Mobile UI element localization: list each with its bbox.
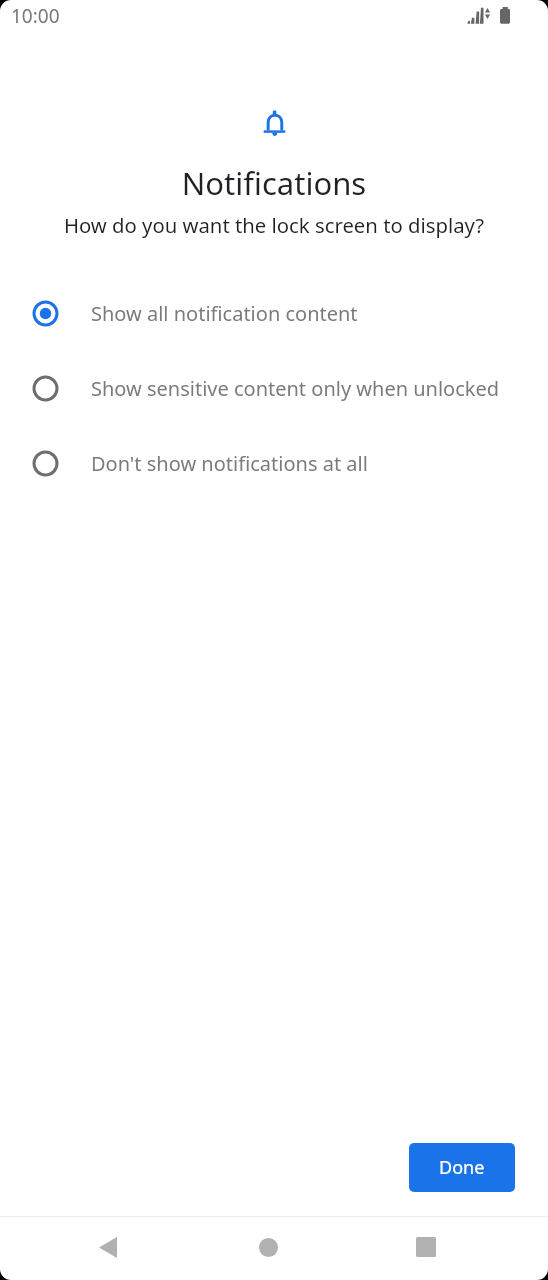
staticText: How do you want the lock screen to displ… <box>0 211 548 239</box>
staticText: Notifications <box>0 162 548 204</box>
staticText: Done <box>439 1155 485 1180</box>
staticText: 10:00 <box>11 3 60 29</box>
button[interactable]: Home <box>240 1219 296 1275</box>
button[interactable]: Done <box>409 1143 515 1192</box>
staticText: Don't show notifications at all <box>91 450 368 477</box>
button[interactable]: Recent apps <box>398 1219 454 1275</box>
button[interactable]: Don't show notifications at all <box>0 426 548 501</box>
staticText: Show sensitive content only when unlocke… <box>91 375 500 402</box>
button[interactable]: Back <box>80 1219 136 1275</box>
staticText: Show all notification content <box>91 300 358 327</box>
button[interactable]: Show all notification content <box>0 276 548 351</box>
button[interactable]: Show sensitive content only when unlocke… <box>0 351 548 426</box>
